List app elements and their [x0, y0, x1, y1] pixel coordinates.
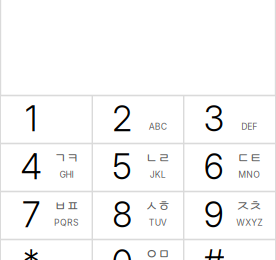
- staticText: ㄴㄹ: [144, 149, 172, 165]
- button[interactable]: 4: [1, 143, 92, 191]
- staticText: #: [203, 242, 224, 260]
- staticText: ㄷㅌ: [235, 149, 263, 165]
- staticText: 6: [204, 146, 224, 188]
- staticText: GHI: [59, 169, 73, 180]
- button[interactable]: 0: [92, 239, 184, 260]
- button[interactable]: 2: [92, 95, 184, 143]
- staticText: 8: [112, 194, 132, 236]
- staticText: ㅇㅁ: [144, 245, 172, 260]
- button[interactable]: 1: [1, 95, 92, 143]
- staticText: ㅅㅎ: [144, 197, 172, 213]
- staticText: *: [23, 242, 39, 260]
- staticText: 9: [204, 194, 224, 236]
- button[interactable]: 8: [92, 191, 184, 239]
- button[interactable]: 9: [184, 191, 275, 239]
- staticText: 5: [112, 146, 132, 188]
- staticText: ㅂㅍ: [53, 197, 80, 213]
- button[interactable]: 3: [184, 95, 275, 143]
- staticText: ABC: [149, 121, 167, 132]
- staticText: WXYZ: [236, 217, 262, 228]
- button[interactable]: #: [184, 239, 275, 260]
- staticText: 2: [112, 98, 132, 140]
- staticText: JKL: [150, 169, 166, 180]
- staticText: ㅈㅊ: [235, 197, 263, 213]
- button[interactable]: 5: [92, 143, 184, 191]
- button[interactable]: *: [1, 239, 92, 260]
- staticText: 4: [20, 146, 41, 188]
- button[interactable]: 7: [1, 191, 92, 239]
- staticText: DEF: [241, 121, 257, 132]
- staticText: 7: [22, 194, 40, 236]
- staticText: 1: [25, 98, 37, 140]
- staticText: TUV: [149, 217, 167, 228]
- staticText: ㄱㅋ: [53, 149, 80, 165]
- staticText: MNO: [238, 169, 260, 180]
- button[interactable]: 6: [184, 143, 275, 191]
- staticText: PQRS: [54, 217, 79, 228]
- staticText: 3: [204, 98, 224, 140]
- staticText: 0: [112, 242, 133, 260]
